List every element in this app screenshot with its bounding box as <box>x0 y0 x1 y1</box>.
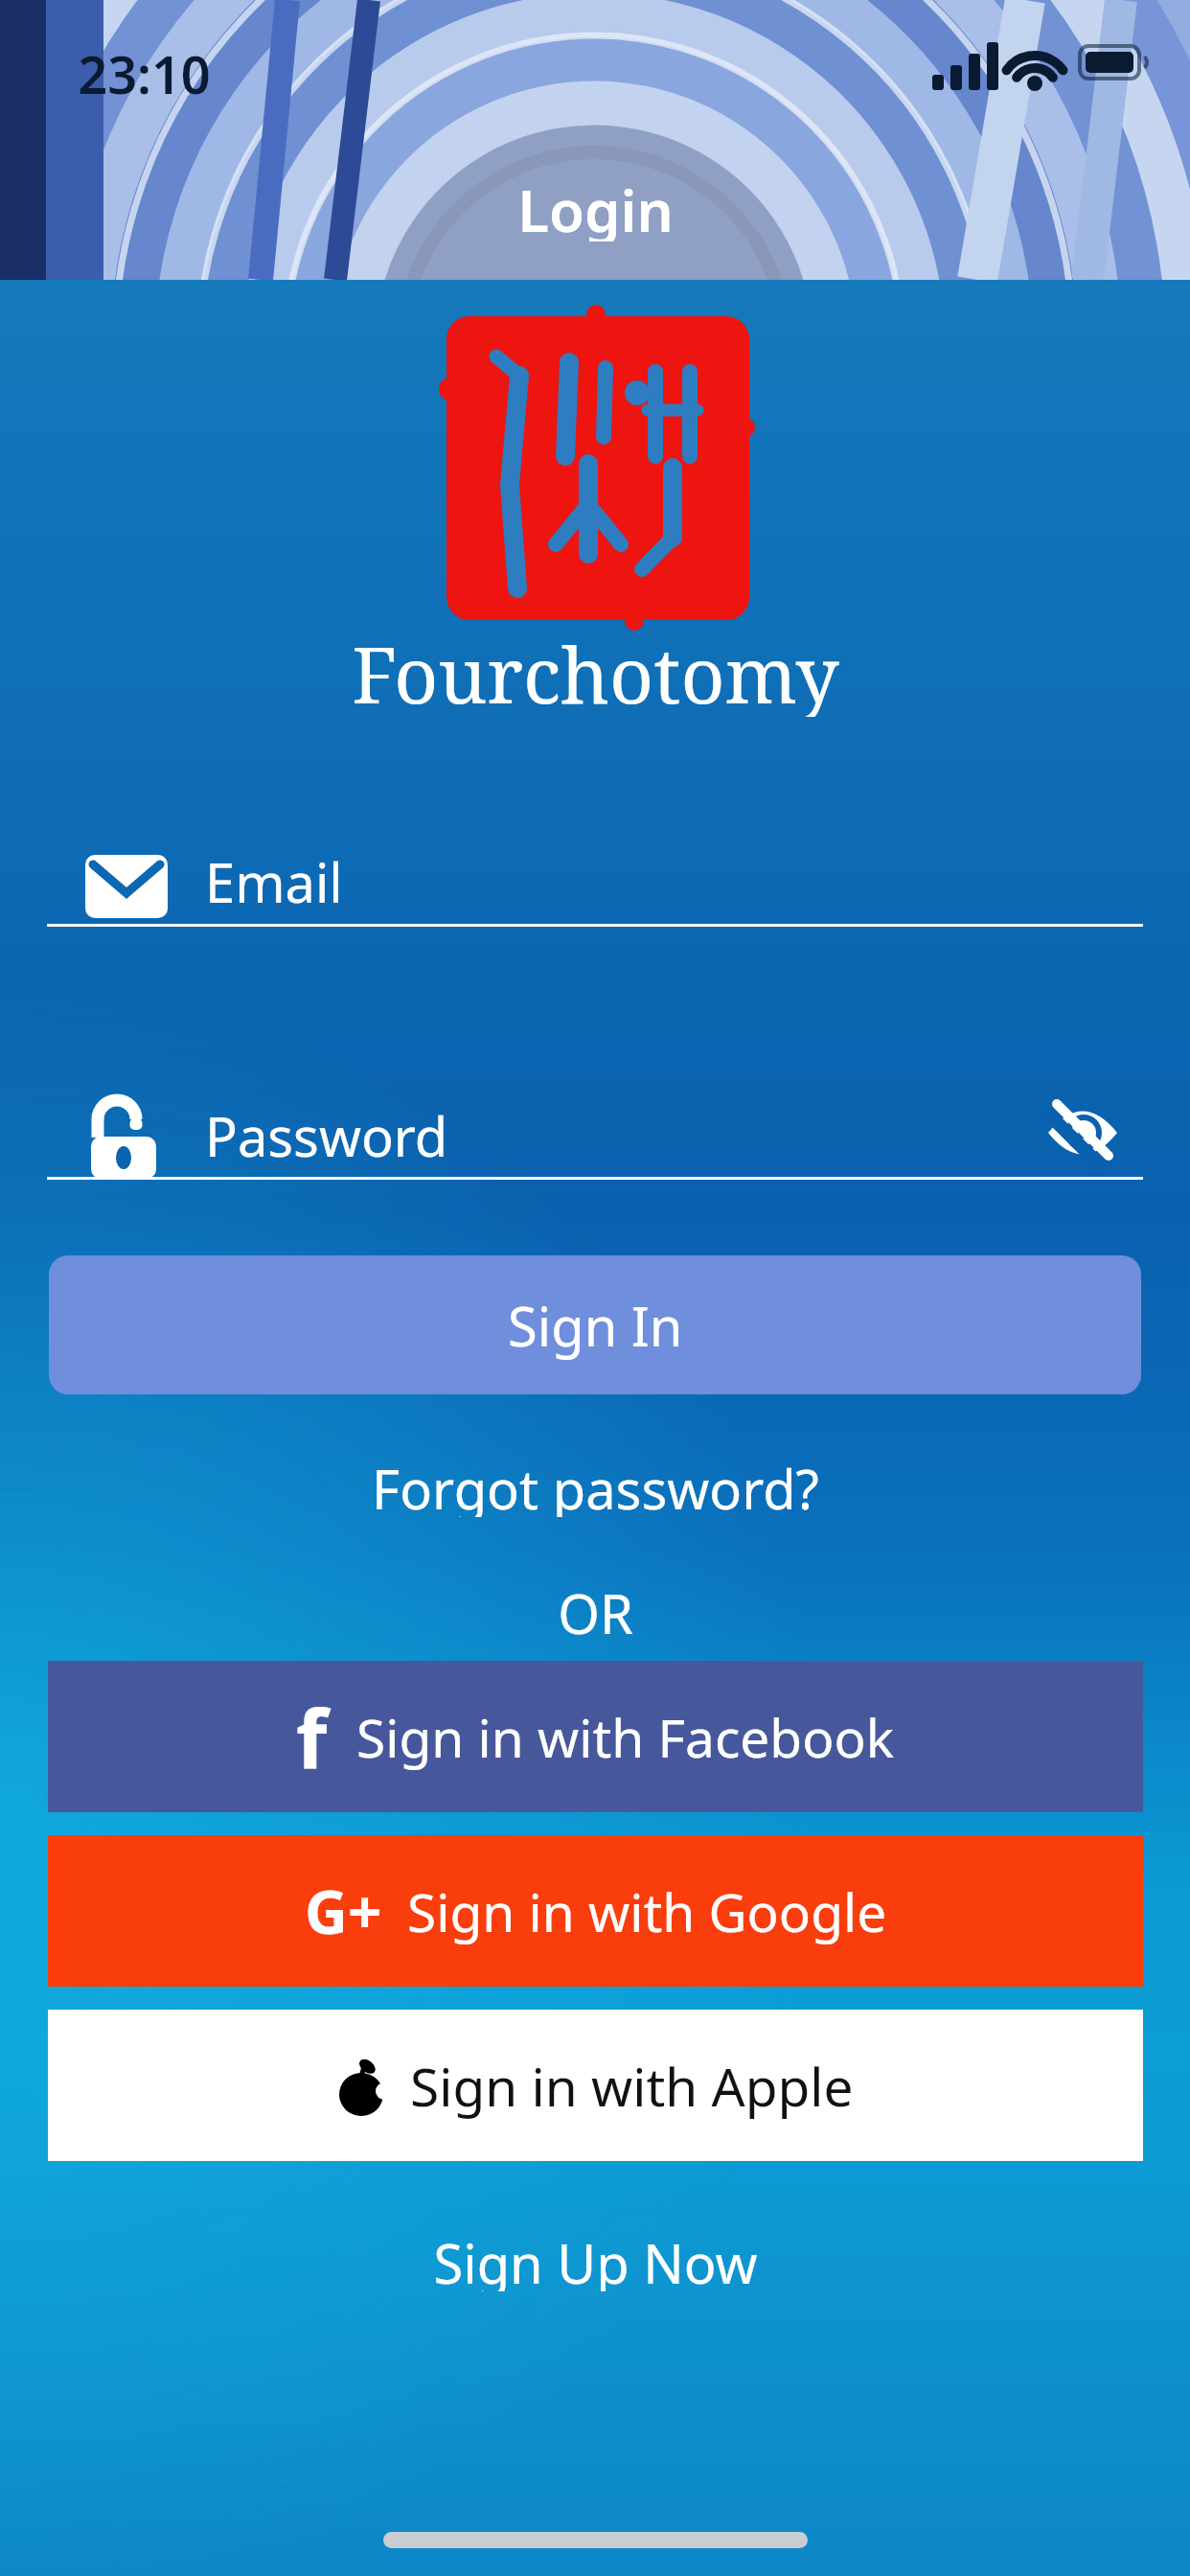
button[interactable]: Sign In <box>49 1255 1141 1394</box>
button[interactable]: G+ <box>48 1835 1143 1987</box>
button[interactable] <box>1048 1101 1117 1162</box>
button[interactable]: Email <box>47 834 1143 930</box>
staticText: Email <box>205 845 343 918</box>
staticText: Sign In <box>508 1289 683 1362</box>
staticText: Password <box>205 1099 448 1172</box>
staticText: Sign in with Facebook <box>356 1701 895 1773</box>
button[interactable]: f <box>48 1661 1143 1812</box>
button[interactable]: Password <box>47 1088 1143 1184</box>
button[interactable]: Sign in with Apple <box>48 2010 1143 2161</box>
button[interactable]: Sign Up Now <box>403 2226 787 2291</box>
staticText: Login <box>517 171 674 241</box>
staticText: Sign Up Now <box>433 2226 758 2291</box>
staticText: Sign in with Apple <box>410 2050 854 2122</box>
staticText: Fourchotomy <box>352 621 839 717</box>
staticText: 23:10 <box>78 38 211 96</box>
staticText: Sign in with Google <box>407 1875 887 1947</box>
staticText: f <box>296 1682 328 1791</box>
staticText: OR <box>558 1576 633 1642</box>
staticText: Forgot password? <box>372 1452 819 1517</box>
staticText: G+ <box>305 1871 382 1951</box>
button[interactable]: Forgot password? <box>355 1452 835 1517</box>
